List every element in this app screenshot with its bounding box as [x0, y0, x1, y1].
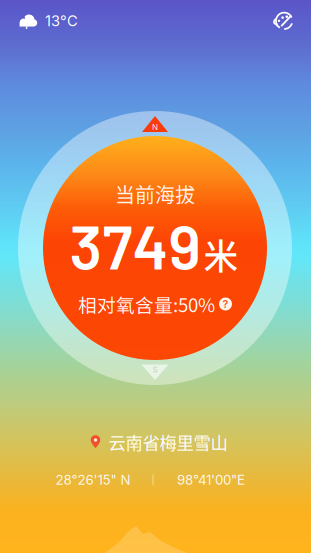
staticText: 米 [203, 229, 238, 279]
staticText: N [152, 122, 158, 132]
staticText: 当前海拔 [115, 179, 195, 208]
button[interactable]: Change theme [274, 11, 294, 31]
button[interactable]: About relative oxygen content [219, 297, 232, 310]
staticText: 3749 [69, 208, 200, 282]
staticText: 相对氧含量:50% [78, 290, 215, 317]
staticText: ? [222, 297, 228, 310]
staticText: 28°26'15" N [55, 472, 130, 488]
staticText: 98°41'00"E [177, 472, 245, 488]
staticText: S [152, 365, 157, 374]
staticText: 云南省梅里雪山 [108, 429, 227, 455]
staticText: 13°C [45, 12, 78, 30]
button[interactable]: 云南省梅里雪山 [90, 429, 227, 455]
